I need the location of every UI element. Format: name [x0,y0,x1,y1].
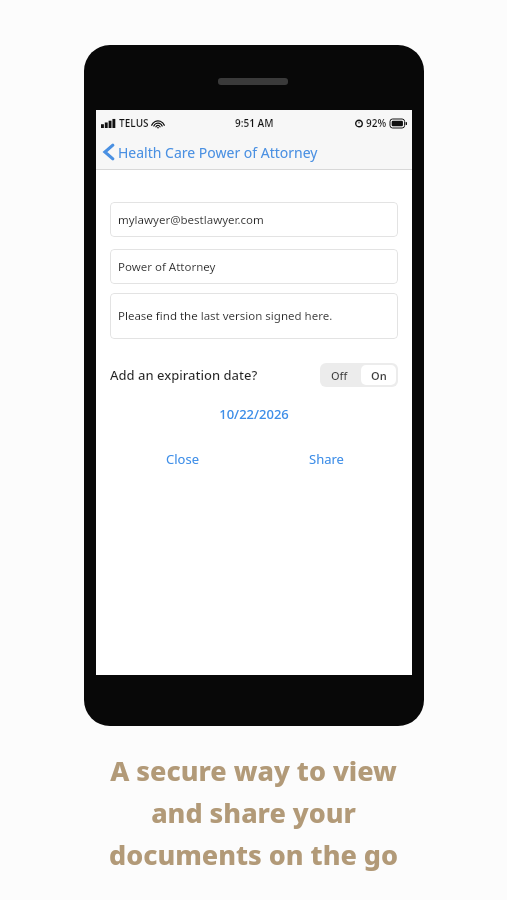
staticText: 92% [366,116,387,130]
staticText: TELUS [119,116,149,130]
staticText: A secure way to view [24,752,483,789]
button[interactable]: Close [110,450,254,468]
staticText: Health Care Power of Attorney [118,143,318,162]
button[interactable]: Share [254,450,398,468]
staticText: mylawyer@bestlawyer.com [118,212,264,228]
staticText: 9:51 AM [235,116,274,130]
staticText: documents on the go [24,836,483,873]
staticText: On [371,368,387,383]
staticText: Share [309,450,344,468]
staticText: Please find the last version signed here… [118,308,333,324]
staticText: Close [166,450,199,468]
staticText: Power of Attorney [118,259,216,275]
button[interactable]: Back [96,135,412,169]
button[interactable]: Please find the last version signed here… [110,293,398,339]
staticText: Off [331,368,348,383]
staticText: and share your [24,794,483,831]
button[interactable]: Power of Attorney [110,249,398,284]
staticText: Add an expiration date? [110,366,258,384]
button[interactable]: 10/22/2026 [110,405,398,423]
other: Back [103,143,115,161]
button[interactable]: mylawyer@bestlawyer.com [110,202,398,237]
button[interactable]: Off [320,363,398,387]
